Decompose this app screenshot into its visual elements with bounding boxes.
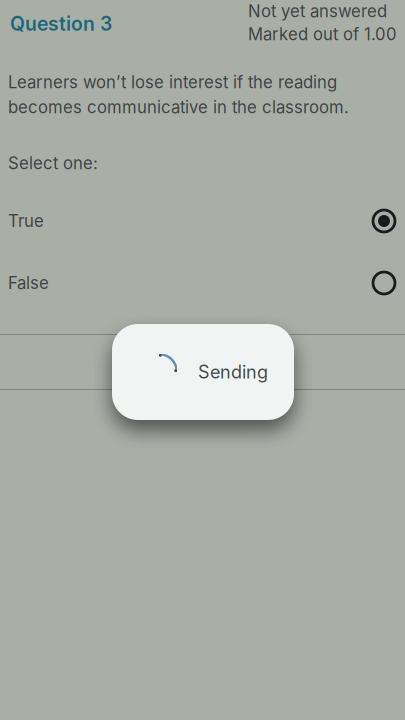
staticText: Marked out of 1.00 [248, 24, 397, 44]
button[interactable]: False [0, 256, 405, 310]
button[interactable]: True [0, 194, 405, 248]
staticText: Question 3 [10, 12, 112, 35]
staticText: Select one: [8, 153, 98, 173]
staticText: Sending [198, 361, 268, 383]
staticText: False [8, 273, 49, 293]
staticText: Learners won’t lose interest if the read… [8, 72, 349, 117]
staticText: Not yet answered [248, 1, 387, 21]
staticText: True [8, 211, 44, 231]
